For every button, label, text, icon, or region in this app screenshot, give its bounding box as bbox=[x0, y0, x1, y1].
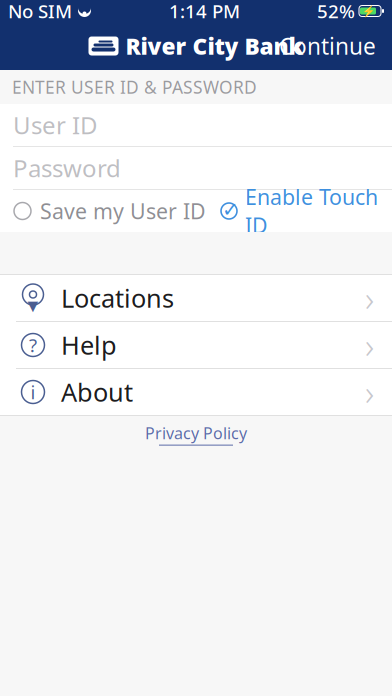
staticText: › bbox=[365, 369, 374, 415]
staticText: 1:14 PM bbox=[169, 0, 240, 23]
staticText: i bbox=[30, 380, 35, 404]
button[interactable]: Privacy Policy bbox=[137, 416, 255, 452]
button[interactable]: ✓ bbox=[220, 173, 378, 249]
staticText: About bbox=[61, 375, 133, 409]
staticText: Locations bbox=[61, 281, 174, 315]
staticText: ▾ bbox=[27, 293, 38, 317]
staticText: No SIM bbox=[8, 0, 72, 23]
staticText: › bbox=[365, 322, 374, 368]
staticText: ENTER USER ID & PASSWORD bbox=[12, 75, 257, 98]
button[interactable]: Continue bbox=[269, 23, 386, 69]
staticText: ✓ bbox=[222, 198, 239, 221]
staticText: Enable Touch ID bbox=[245, 183, 378, 239]
staticText: Password bbox=[13, 152, 121, 184]
staticText: Save my User ID bbox=[40, 197, 206, 225]
staticText: Privacy Policy bbox=[145, 422, 247, 444]
staticText: › bbox=[365, 275, 374, 321]
button[interactable]: ▾ bbox=[0, 275, 392, 321]
button[interactable]: ? bbox=[0, 322, 392, 368]
staticText: ⚡ bbox=[361, 5, 374, 17]
button[interactable]: i bbox=[0, 369, 392, 415]
staticText: Help bbox=[61, 328, 117, 362]
staticText: 52% bbox=[317, 0, 355, 23]
staticText: ? bbox=[29, 333, 37, 357]
button[interactable]: Save my User ID bbox=[14, 187, 206, 235]
staticText: River City Bank bbox=[125, 31, 303, 61]
staticText: User ID bbox=[13, 109, 98, 141]
staticText: Continue bbox=[279, 31, 376, 61]
